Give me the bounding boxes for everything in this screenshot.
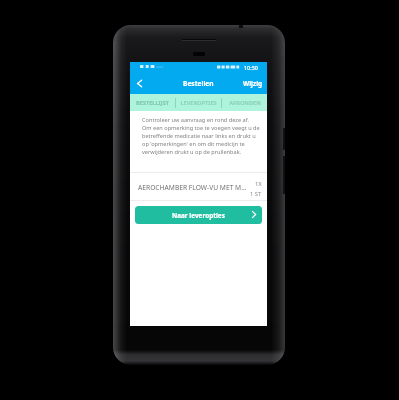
staticText: 1X	[255, 180, 262, 188]
staticText: Bestellen	[183, 79, 214, 88]
staticText: Wijzig	[243, 79, 263, 88]
staticText: BESTELLIJST	[136, 99, 169, 107]
staticText: AFRONDEN	[229, 99, 261, 107]
staticText: Om een opmerking toe te voegen veegt u d…	[142, 124, 260, 132]
staticText: Naar leveropties	[172, 211, 225, 220]
staticText: betreffende medicatie naar links en druk…	[142, 132, 256, 140]
staticText: op 'opmerkingen' en om dit medicijn te	[142, 140, 245, 148]
staticText: Controleer uw aanvraag en rond deze af.	[142, 116, 249, 124]
button[interactable]: AFRONDEN	[222, 94, 267, 111]
button[interactable]: Naar leveropties	[135, 206, 262, 224]
button[interactable]: Wijzig	[237, 73, 267, 95]
staticText: 10:50	[244, 64, 258, 71]
button[interactable]: AEROCHAMBER FLOW-VU MET M...	[130, 173, 267, 200]
button[interactable]: BESTELLIJST	[130, 94, 175, 111]
button[interactable]: LEVEROPTIES	[176, 94, 221, 111]
staticText: AEROCHAMBER FLOW-VU MET M...	[138, 183, 247, 192]
staticText: verwijderen drukt u op de prullenbak.	[142, 148, 242, 156]
staticText: LEVEROPTIES	[180, 99, 217, 107]
button[interactable]: Terug	[130, 73, 149, 95]
staticText: 1 ST	[250, 190, 262, 198]
